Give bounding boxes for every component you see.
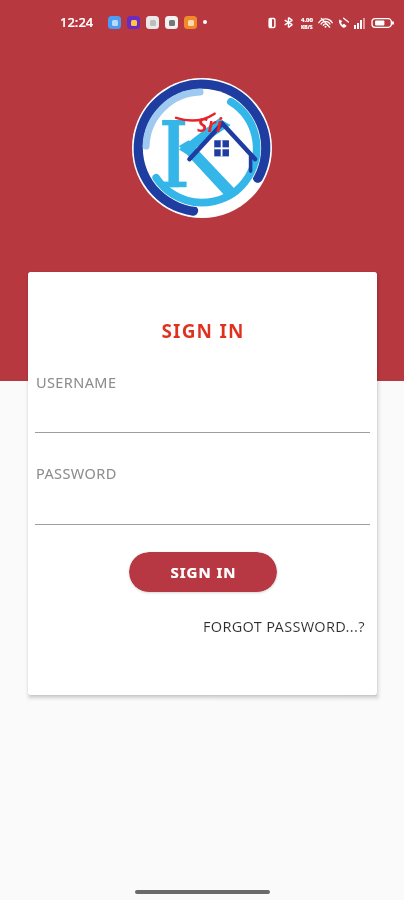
staticText: PASSWORD xyxy=(36,463,117,483)
button[interactable]: SIGN IN xyxy=(129,552,277,592)
staticText: Sri xyxy=(197,111,223,138)
staticText: KB/S xyxy=(301,24,313,29)
staticText: 4.00 xyxy=(301,16,313,24)
staticText: SIGN IN xyxy=(161,318,245,344)
staticText: USERNAME xyxy=(36,372,117,392)
staticText: 12:24 xyxy=(60,13,94,31)
button[interactable]: PASSWORD xyxy=(36,459,369,511)
staticText: SIGN IN xyxy=(170,562,237,582)
button[interactable]: USERNAME xyxy=(36,368,369,420)
staticText: FORGOT PASSWORD...? xyxy=(203,616,365,636)
button[interactable]: FORGOT PASSWORD...? xyxy=(201,612,367,640)
